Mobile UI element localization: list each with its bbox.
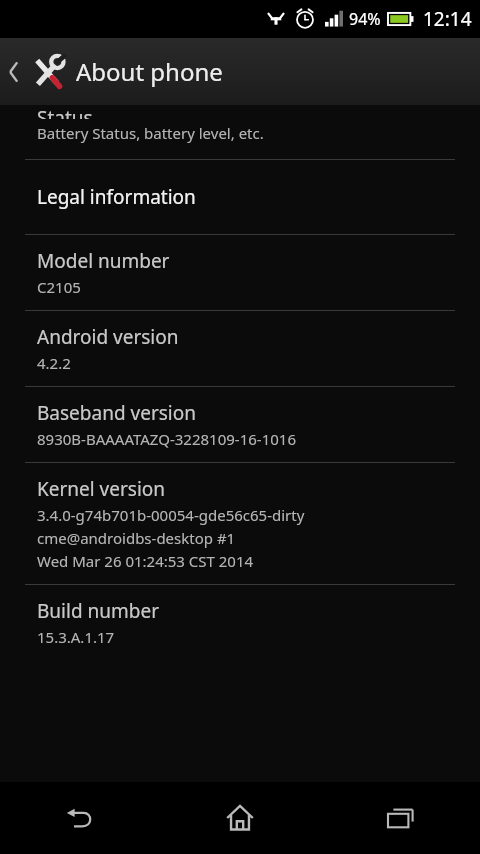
staticText: C2105 [37,277,81,297]
staticText: 12:14 [423,6,472,32]
staticText: Model number [37,248,170,274]
staticText: 15.3.A.1.17 [37,627,115,647]
staticText: About phone [76,55,223,88]
button[interactable]: Model number [0,235,480,310]
staticText: Baseband version [37,400,196,426]
button[interactable]: Build number [0,585,480,660]
button[interactable]: Up, About phone [0,38,480,105]
staticText: cme@androidbs-desktop #1 [37,528,236,548]
button[interactable]: Kernel version [0,463,480,584]
button[interactable]: Baseband version [0,387,480,462]
staticText: 8930B-BAAAATAZQ-3228109-16-1016 [37,429,296,449]
staticText: Build number [37,598,160,624]
button[interactable]: Status [0,105,480,159]
staticText: Android version [37,324,179,350]
staticText: Wed Mar 26 01:24:53 CST 2014 [37,551,254,571]
button[interactable]: Home [160,782,320,854]
staticText: Legal information [37,184,196,210]
button[interactable]: Recent apps [320,782,480,854]
staticText: 3.4.0-g74b701b-00054-gde56c65-dirty [37,505,305,525]
staticText: 94% [349,8,381,30]
button[interactable]: Legal information [0,160,480,234]
staticText: 4.2.2 [37,353,71,373]
button[interactable]: Back [0,782,160,854]
button[interactable]: Android version [0,311,480,386]
staticText: Battery Status, battery level, etc. [37,123,264,143]
staticText: Status [37,105,93,119]
staticText: Kernel version [37,476,166,502]
